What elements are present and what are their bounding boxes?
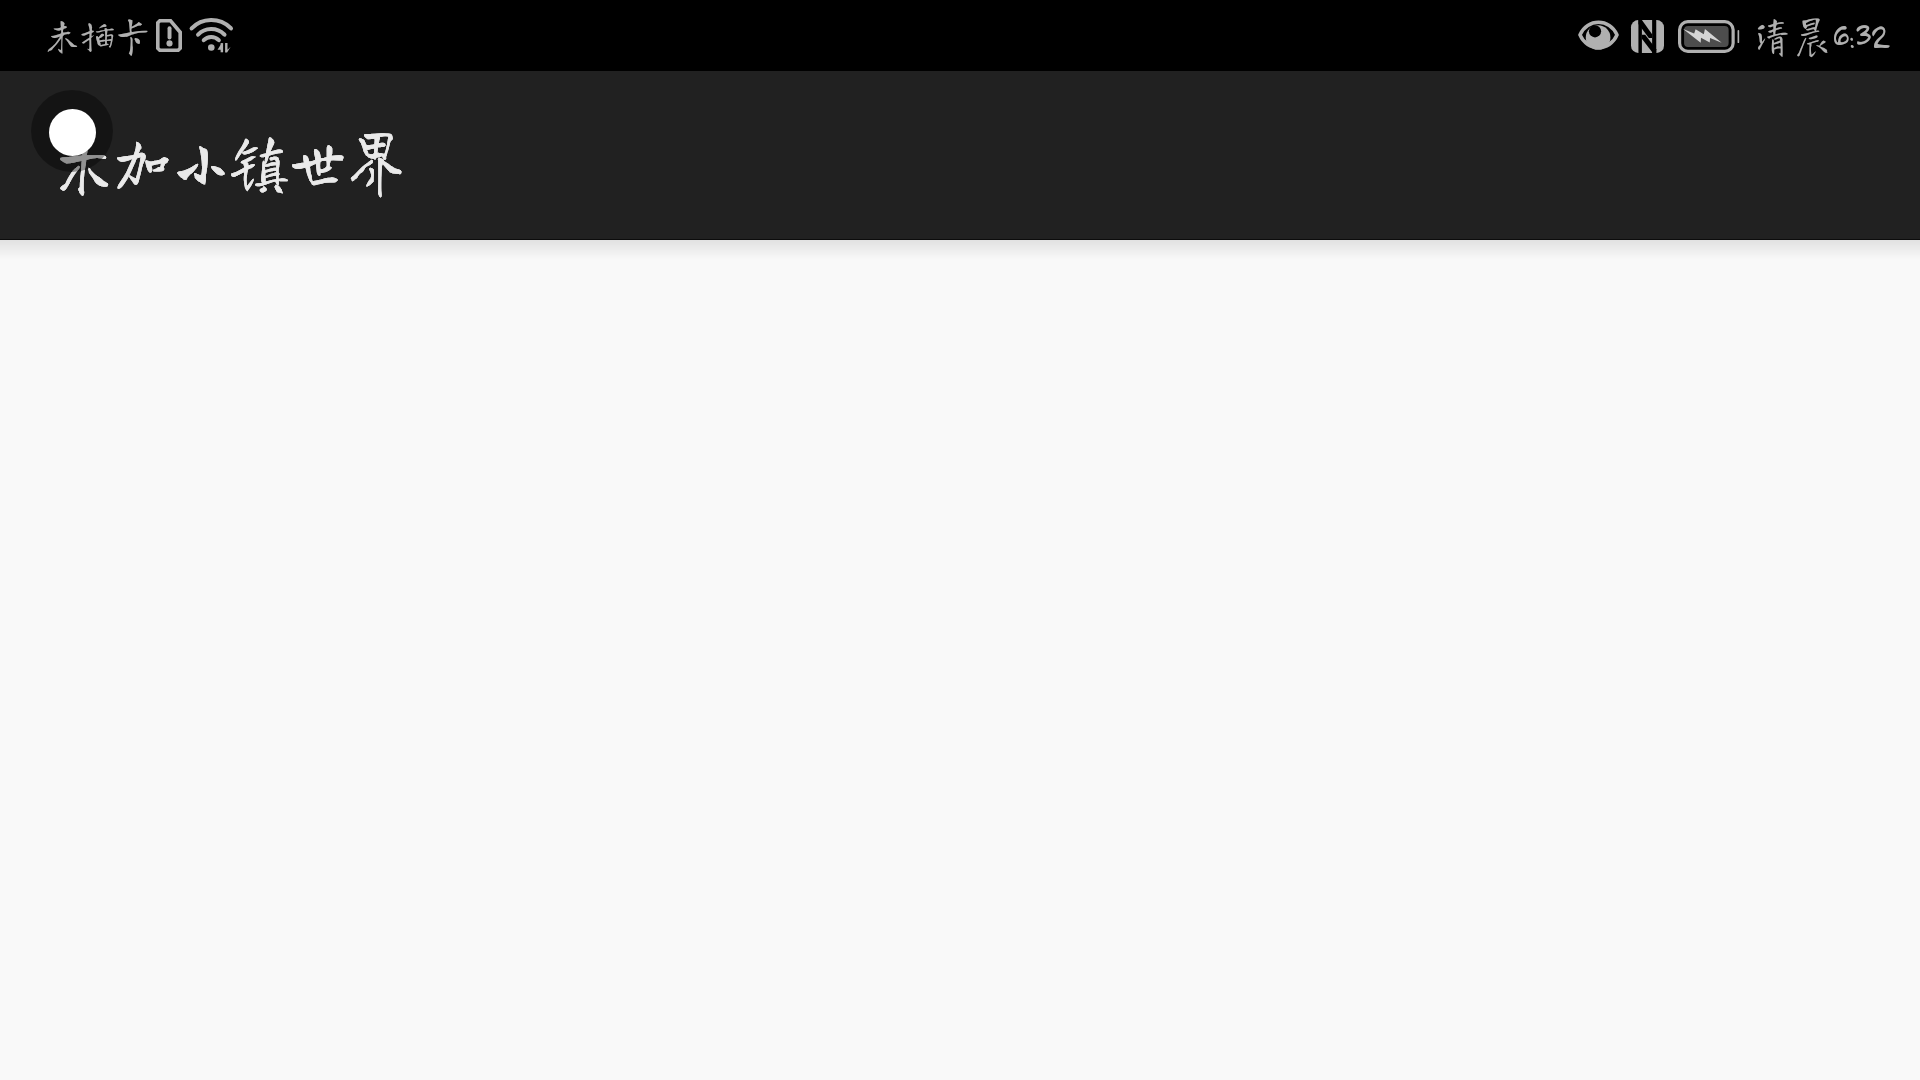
staticText: 未插卡	[45, 15, 151, 54]
button[interactable]: Loading	[31, 90, 113, 172]
staticText: 清晨6:32	[1753, 12, 1889, 56]
staticText: 木加小镇世界	[55, 127, 405, 193]
